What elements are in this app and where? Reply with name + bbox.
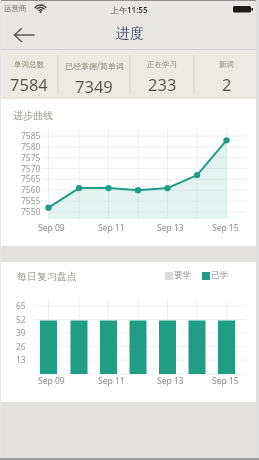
staticText: 新词 [219, 60, 234, 69]
staticText: Sep 13 [157, 222, 184, 234]
staticText: Sep 11 [98, 222, 125, 234]
staticText: 7580 [21, 141, 41, 153]
button[interactable]: 已经掌握/简单词 [58, 50, 130, 99]
staticText: Sep 15 [212, 222, 239, 234]
staticText: 7555 [21, 195, 41, 207]
staticText: 要学 [174, 270, 191, 281]
staticText: Sep 15 [212, 375, 239, 387]
staticText: 7550 [21, 206, 41, 218]
staticText: Sep 11 [98, 375, 125, 387]
staticText: 39 [16, 327, 26, 339]
staticText: 7584 [10, 73, 48, 95]
staticText: Sep 13 [157, 375, 184, 387]
staticText: 7560 [21, 184, 41, 196]
staticText: 正在学习 [147, 60, 177, 69]
staticText: 7575 [21, 152, 41, 164]
staticText: 7570 [21, 163, 41, 175]
staticText: 单词总数 [14, 60, 44, 69]
staticText: 已学 [211, 270, 228, 281]
staticText: 进步曲线 [13, 109, 53, 122]
staticText: 7565 [21, 173, 41, 185]
button[interactable]: 新词 [194, 50, 259, 99]
staticText: 每日复习盘点 [17, 270, 77, 283]
staticText: 233 [148, 73, 177, 95]
button[interactable]: 正在学习 [130, 50, 194, 99]
button[interactable] [8, 22, 40, 48]
staticText: 2 [222, 73, 232, 95]
staticText: 26 [16, 341, 26, 353]
staticText: 已经掌握/简单词 [65, 60, 124, 71]
staticText: 65 [16, 300, 26, 312]
staticText: Sep 09 [38, 222, 65, 234]
staticText: 52 [16, 314, 26, 326]
staticText: 7349 [75, 75, 113, 97]
staticText: 进度 [116, 25, 144, 43]
staticText: 上午11:55 [111, 4, 148, 15]
staticText: 7585 [21, 130, 41, 142]
staticText: 13 [16, 354, 26, 366]
staticText: Sep 09 [38, 375, 65, 387]
button[interactable]: 单词总数 [0, 50, 58, 99]
staticText: 运营商 [4, 4, 27, 13]
